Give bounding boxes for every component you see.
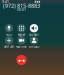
staticText: speaker (29, 33, 39, 36)
staticText: FaceTime (16, 45, 27, 49)
button[interactable]: Contacts (30, 36, 38, 45)
button[interactable]: End call (16, 55, 27, 65)
button[interactable]: FaceTime (17, 36, 26, 45)
staticText: add call (4, 45, 14, 49)
button[interactable]: Add call (5, 36, 13, 45)
staticText: mute (5, 33, 12, 36)
button[interactable]: Speaker (30, 24, 38, 32)
staticText: 9:41 (2, 0, 9, 4)
staticText: 00:01 (17, 7, 26, 12)
button[interactable]: Mute (5, 24, 13, 32)
staticText: keypad (17, 33, 25, 36)
staticText: contacts (29, 45, 39, 49)
staticText: ▮ ▮ ▮ (34, 0, 39, 3)
button[interactable]: Keypad (17, 24, 26, 32)
staticText: (972) 815-8883 (3, 2, 40, 9)
